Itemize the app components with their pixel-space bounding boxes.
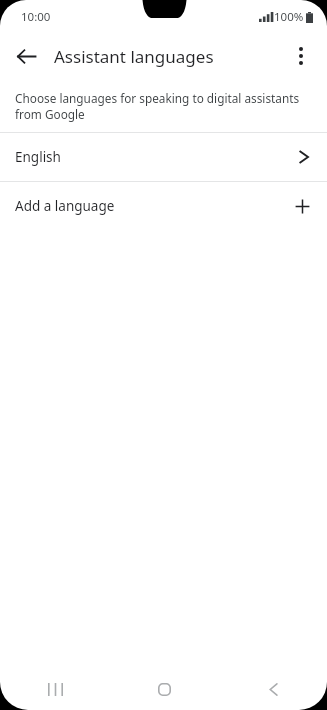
- button[interactable]: English: [0, 133, 327, 181]
- button[interactable]: Back: [6, 36, 46, 76]
- staticText: Choose languages for speaking to digital…: [15, 90, 300, 106]
- staticText: Add a language: [15, 197, 115, 215]
- button[interactable]: More options: [281, 36, 321, 76]
- staticText: English: [15, 148, 61, 166]
- staticText: 100%: [274, 9, 304, 25]
- staticText: Assistant languages: [54, 45, 214, 68]
- button[interactable]: Add a language: [0, 182, 327, 230]
- staticText: 10:00: [21, 9, 51, 25]
- button[interactable]: Recent apps: [23, 668, 87, 710]
- staticText: from Google: [15, 106, 85, 122]
- button[interactable]: Back: [241, 668, 305, 710]
- button[interactable]: Home: [132, 668, 196, 710]
